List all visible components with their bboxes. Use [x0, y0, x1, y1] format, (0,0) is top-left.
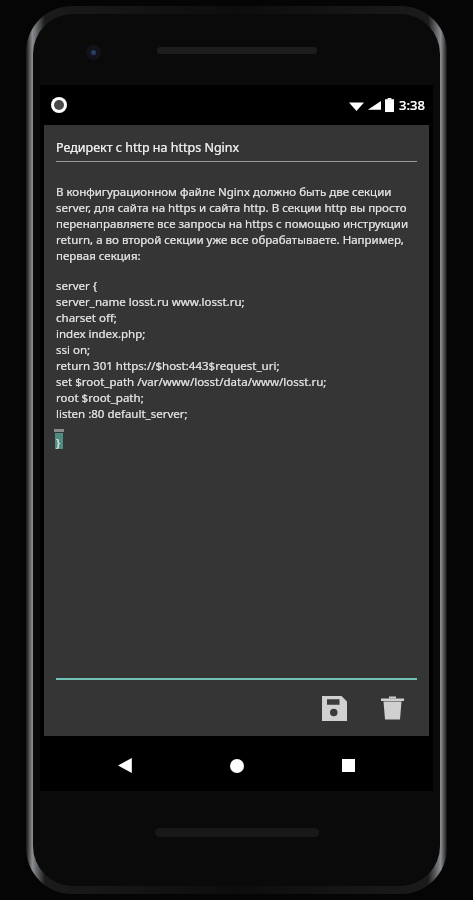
button[interactable]: Back	[99, 740, 151, 791]
button[interactable]: Home	[211, 740, 263, 791]
staticText: server { server_name losst.ru www.losst.…	[56, 278, 327, 422]
button[interactable]: Save	[311, 685, 357, 731]
button[interactable]: Recent apps	[322, 740, 374, 791]
button[interactable]: Delete	[369, 685, 415, 731]
staticText: 3:38	[399, 96, 425, 114]
button[interactable]: В конфигурационном файле Nginx должно бы…	[56, 184, 417, 678]
staticText: }	[56, 435, 61, 451]
staticText: Редирект с http на https Nginx	[56, 139, 240, 156]
button[interactable]: Редирект с http на https Nginx	[56, 139, 417, 162]
staticText: В конфигурационном файле Nginx должно бы…	[56, 184, 417, 264]
